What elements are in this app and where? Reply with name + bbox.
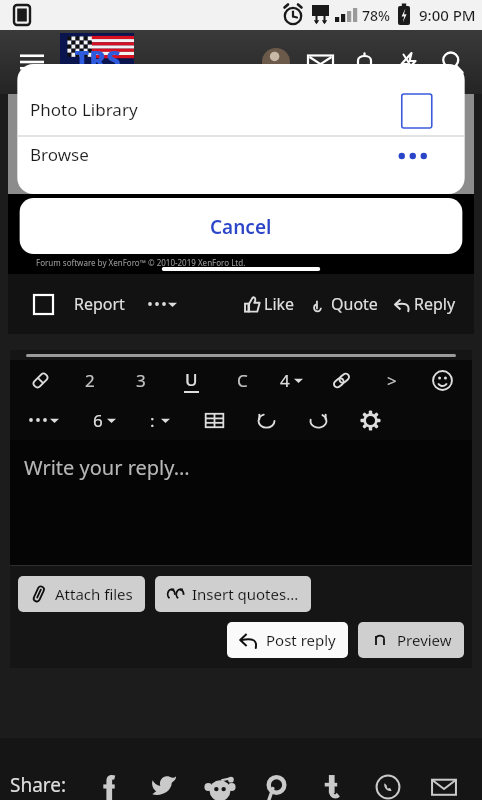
button[interactable]: More formatting (24, 410, 63, 430)
button[interactable]: Share on Email (416, 760, 472, 800)
staticText: 3 (136, 369, 146, 392)
button[interactable]: Font size (276, 365, 307, 396)
button[interactable]: Share on Reddit (192, 760, 248, 800)
button[interactable]: Reply (394, 287, 456, 321)
button[interactable]: Lists (89, 405, 120, 436)
button[interactable]: Underline (175, 364, 207, 396)
button[interactable]: Report (74, 285, 125, 323)
staticText: Browse (30, 143, 89, 166)
button[interactable]: Smilies (426, 364, 458, 396)
button[interactable]: Alignment (146, 405, 174, 436)
button[interactable]: Search (430, 40, 474, 84)
staticText: Photo Library (30, 98, 138, 121)
button[interactable]: Select post (26, 287, 60, 321)
button[interactable]: More options (141, 291, 183, 317)
button[interactable]: Alerts (342, 40, 386, 84)
button[interactable]: Home (60, 33, 134, 91)
staticText: Attach files (55, 584, 133, 604)
staticText: TRS (74, 42, 121, 76)
button[interactable]: Attach files (18, 576, 145, 612)
button[interactable]: Share on Tumblr (304, 760, 360, 800)
button[interactable]: Quote (311, 287, 378, 321)
staticText: Share: (10, 772, 67, 798)
staticText: Like (264, 293, 295, 315)
staticText: 78% (362, 6, 390, 25)
staticText: : (150, 409, 155, 432)
button[interactable]: Remove formatting (24, 364, 56, 396)
button[interactable]: Undo (250, 404, 282, 436)
button[interactable]: Insert quotes... (155, 576, 311, 612)
button[interactable]: Inbox (298, 40, 342, 84)
button[interactable]: Code (376, 364, 408, 396)
button[interactable]: Menu (8, 38, 56, 86)
button[interactable]: Text color (226, 364, 258, 396)
button[interactable]: Account (254, 40, 298, 84)
staticText: > (387, 369, 397, 392)
staticText: 9:00 PM (419, 5, 476, 25)
button[interactable]: Attached image (8, 94, 474, 274)
button[interactable]: Share on WhatsApp (360, 760, 416, 800)
button[interactable]: Share on Facebook (81, 760, 136, 800)
staticText: Insert quotes... (192, 584, 299, 604)
button[interactable]: Share on Pinterest (248, 760, 304, 800)
button[interactable]: Italic (125, 364, 157, 396)
staticText: Post reply (266, 630, 336, 650)
button[interactable]: What's new (386, 40, 430, 84)
staticText: Preview (397, 630, 452, 650)
staticText: Write your reply... (24, 454, 190, 481)
button[interactable]: Insert table (198, 404, 230, 436)
staticText: 6 (93, 409, 103, 432)
staticText: U (185, 368, 198, 391)
staticText: 2 (85, 369, 95, 392)
button[interactable]: Like (244, 287, 295, 321)
button[interactable]: Bold (74, 364, 106, 396)
staticText: C (237, 369, 248, 392)
staticText: Cancel (210, 214, 272, 240)
button[interactable]: Redo (302, 404, 334, 436)
staticText: 4 (280, 369, 290, 392)
button[interactable]: Write your reply... (10, 440, 472, 565)
button[interactable]: Preview (358, 622, 464, 658)
button[interactable]: Share on Twitter (136, 760, 192, 800)
staticText: Quote (331, 293, 378, 315)
button[interactable]: Insert link (325, 364, 357, 396)
staticText: Reply (414, 293, 456, 315)
staticText: Forum software by XenForo™ © 2010-2019 X… (36, 257, 246, 268)
button[interactable]: Post reply (227, 622, 348, 658)
button[interactable]: Editor settings (354, 404, 386, 436)
